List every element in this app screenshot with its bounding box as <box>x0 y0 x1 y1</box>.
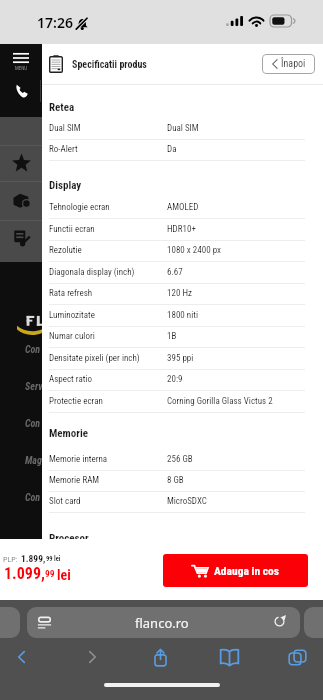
staticText: 99 lei <box>46 555 61 563</box>
staticText: 6.67 <box>167 267 183 278</box>
button[interactable]: Rezolutie <box>49 240 323 261</box>
button[interactable]: Protectie ecran <box>49 391 323 412</box>
staticText: Aspect ratio <box>49 374 167 385</box>
staticText: Corning Gorilla Glass Victus 2 <box>167 396 273 407</box>
button[interactable]: Con <box>25 492 41 504</box>
staticText: HDR10+ <box>167 224 196 235</box>
button[interactable]: Serv <box>25 381 43 393</box>
staticText: Memorie RAM <box>49 475 167 486</box>
button[interactable]: Slot card <box>49 491 323 512</box>
button[interactable]: Product specifications <box>0 219 42 253</box>
staticText: Memorie <box>49 427 88 440</box>
button[interactable]: Aspect ratio <box>49 369 323 390</box>
staticText: 1.099, <box>4 564 45 583</box>
button[interactable]: Bookmarks <box>212 640 246 674</box>
staticText: Ro-Alert <box>49 144 167 155</box>
staticText: Înapoi <box>281 58 306 70</box>
staticText: 1080 x 2400 px <box>167 245 222 256</box>
staticText: Procesor <box>49 532 89 545</box>
staticText: 120 Hz <box>167 288 192 299</box>
button[interactable]: Mag <box>25 455 42 467</box>
staticText: Luminozitate <box>49 310 167 321</box>
button[interactable]: Memorie RAM <box>49 470 323 491</box>
button[interactable]: Con <box>25 418 41 430</box>
staticText: 17:26 <box>37 13 73 32</box>
staticText: Adauga in cos <box>214 564 279 577</box>
button[interactable]: Densitate pixeli (per inch) <box>49 348 323 369</box>
staticText: Specificatii produs <box>72 59 147 71</box>
staticText: 1B <box>167 331 177 342</box>
staticText: 99 <box>45 568 55 579</box>
staticText: Tehnologie ecran <box>49 202 167 213</box>
button[interactable]: Forward <box>75 640 109 674</box>
button[interactable]: Memorie interna <box>49 449 323 470</box>
staticText: Functii ecran <box>49 224 167 235</box>
button[interactable]: Tabs <box>280 640 314 674</box>
button[interactable]: Share <box>143 640 177 674</box>
staticText: Retea <box>49 101 75 114</box>
staticText: MENU <box>15 65 28 71</box>
staticText: 256 GB <box>167 454 193 465</box>
staticText: 1.899, <box>21 553 46 564</box>
button[interactable]: Call <box>0 79 42 103</box>
button[interactable]: Favorites <box>0 145 42 179</box>
button[interactable]: flanco.ro <box>27 607 300 638</box>
staticText: Dual SIM <box>167 123 199 134</box>
staticText: Numar culori <box>49 331 167 342</box>
staticText: Rata refresh <box>49 288 167 299</box>
staticText: Display <box>49 179 82 192</box>
staticText: MicroSDXC <box>167 496 207 507</box>
staticText: Protectie ecran <box>49 396 167 407</box>
button[interactable]: Diagonala display (inch) <box>49 262 323 283</box>
staticText: lei <box>57 567 71 583</box>
button[interactable]: Back <box>5 640 39 674</box>
button[interactable]: Menu <box>0 49 42 75</box>
staticText: Diagonala display (inch) <box>49 267 167 278</box>
button[interactable]: Rata refresh <box>49 283 323 304</box>
staticText: Rezolutie <box>49 245 167 256</box>
staticText: PLP: <box>3 555 18 564</box>
staticText: flanco.ro <box>135 614 189 632</box>
button[interactable]: Functii ecran <box>49 219 323 240</box>
button[interactable]: Con <box>25 344 41 356</box>
staticText: Slot card <box>49 496 167 507</box>
staticText: 395 ppi <box>167 353 194 364</box>
button[interactable]: Înapoi <box>262 54 315 74</box>
button[interactable]: Dual SIM <box>49 118 323 139</box>
staticText: 20:9 <box>167 374 183 385</box>
button[interactable]: Next tab <box>304 607 323 638</box>
staticText: AMOLED <box>167 202 199 213</box>
button[interactable]: Compare products <box>0 183 42 217</box>
button[interactable]: Previous tab <box>0 607 20 638</box>
button[interactable]: Ro-Alert <box>49 139 323 160</box>
staticText: 1800 niti <box>167 310 198 321</box>
button[interactable]: Adauga in cos <box>163 554 308 587</box>
staticText: Dual SIM <box>49 123 167 134</box>
button[interactable]: Luminozitate <box>49 305 323 326</box>
staticText: Memorie interna <box>49 454 167 465</box>
staticText: Densitate pixeli (per inch) <box>49 353 167 364</box>
staticText: 8 GB <box>167 475 184 486</box>
button[interactable]: Tehnologie ecran <box>49 197 323 218</box>
staticText: Da <box>167 144 177 155</box>
button[interactable]: Numar culori <box>49 326 323 347</box>
